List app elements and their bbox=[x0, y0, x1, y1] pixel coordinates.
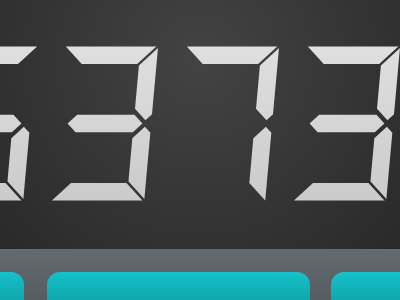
button[interactable]: Previous lap bbox=[0, 272, 24, 300]
button[interactable]: Next lap bbox=[331, 272, 400, 300]
button[interactable]: Start timer bbox=[47, 272, 310, 300]
